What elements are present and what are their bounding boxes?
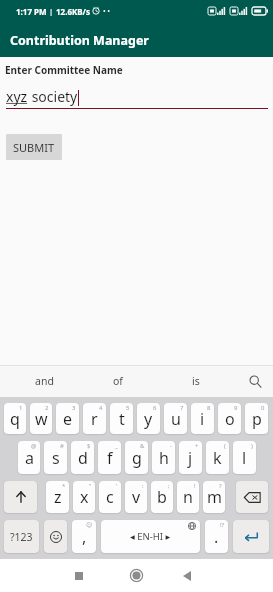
button[interactable]: Space [101,520,200,553]
staticText: j [188,447,193,469]
staticText: 1:17 PM [16,6,47,17]
staticText: 7 [180,404,184,412]
button[interactable]: , [72,520,96,553]
staticText: f [107,447,113,469]
staticText: a [25,447,34,469]
staticText: ◂ EN-HI ▸ [130,530,171,543]
button[interactable]: y [137,403,160,434]
staticText: i [200,408,205,430]
staticText: w [35,408,48,430]
staticText: e [63,408,73,430]
staticText: and [35,374,54,388]
button[interactable]: c [99,481,121,513]
staticText: 8 [207,404,211,412]
staticText: : [142,482,144,490]
button[interactable]: h [152,441,175,474]
staticText: t [119,408,125,430]
button[interactable]: n [177,481,199,513]
staticText: # [60,442,64,450]
button[interactable]: e [56,403,79,434]
staticText: ' [116,482,118,490]
staticText: 4 [99,404,103,412]
staticText: q [10,408,20,430]
staticText: y [144,408,153,430]
staticText: d [78,447,88,469]
staticText: ?123 [10,530,33,544]
button[interactable]: z [46,481,69,513]
button[interactable]: SUBMIT [6,134,62,160]
staticText: k [213,447,222,469]
button[interactable]: x [73,481,95,513]
staticText: ? [219,482,222,490]
staticText: c [106,486,114,508]
button[interactable]: r [83,403,106,434]
staticText: ; [168,482,170,490]
button[interactable]: Backspace [236,481,268,513]
staticText: 12.6KB/s [56,6,90,17]
staticText: - [170,442,172,450]
staticText: h [159,447,169,469]
staticText: 6 [153,404,157,412]
button[interactable]: b [151,481,173,513]
staticText: Contribution Manager [10,32,149,49]
button[interactable]: g [125,441,148,474]
button[interactable]: ?123 [4,520,39,553]
button[interactable]: i [191,403,214,434]
staticText: 9 [234,404,238,412]
button[interactable]: m [203,481,225,513]
button[interactable]: d [71,441,94,474]
button[interactable]: Shift [4,481,37,513]
button[interactable]: Recent apps [65,559,93,592]
button[interactable]: l [233,441,256,474]
button[interactable]: j [179,441,202,474]
staticText: $ [87,442,91,450]
staticText: SUBMIT [13,140,55,155]
button[interactable]: Search [244,365,273,397]
button[interactable]: is [148,365,244,397]
button[interactable]: t [110,403,133,434]
staticText: v [132,486,141,508]
staticText: l [242,447,247,469]
staticText: o [225,408,235,430]
staticText: m [207,486,222,508]
staticText: " [89,482,92,490]
staticText: p [252,408,262,430]
staticText: s [52,447,60,469]
staticText: x [80,486,89,508]
button[interactable]: and [0,365,88,397]
button[interactable]: p [245,403,268,434]
staticText: 1 [19,404,23,412]
staticText: ) [251,442,253,450]
staticText: ! [194,482,196,490]
button[interactable]: q [4,403,26,434]
button[interactable]: o [218,403,241,434]
button[interactable]: w [30,403,52,434]
staticText: 2 [45,404,49,412]
button[interactable]: of [88,365,148,397]
staticText: , [82,526,87,548]
staticText: 0 [261,404,265,412]
button[interactable]: Back [173,559,201,592]
staticText: n [183,486,193,508]
button[interactable]: . [205,520,228,553]
button[interactable]: Emoji [44,520,67,553]
staticText: + [195,442,199,450]
staticText: Enter Committee Name [5,63,123,77]
staticText: ( [224,442,226,450]
button[interactable]: Home [122,559,150,592]
staticText: society [28,87,78,106]
button[interactable]: a [18,441,40,474]
button[interactable]: v [125,481,147,513]
staticText: xyz [6,87,28,106]
staticText: is [192,374,200,388]
button[interactable]: Enter [233,520,269,553]
button[interactable]: k [206,441,229,474]
staticText: 3 [72,404,76,412]
staticText: * [62,482,66,490]
button[interactable]: s [44,441,67,474]
staticText: b [157,486,167,508]
staticText: @ [31,442,37,450]
button[interactable]: u [164,403,187,434]
staticText: !? [220,521,225,529]
button[interactable]: f [98,441,121,474]
